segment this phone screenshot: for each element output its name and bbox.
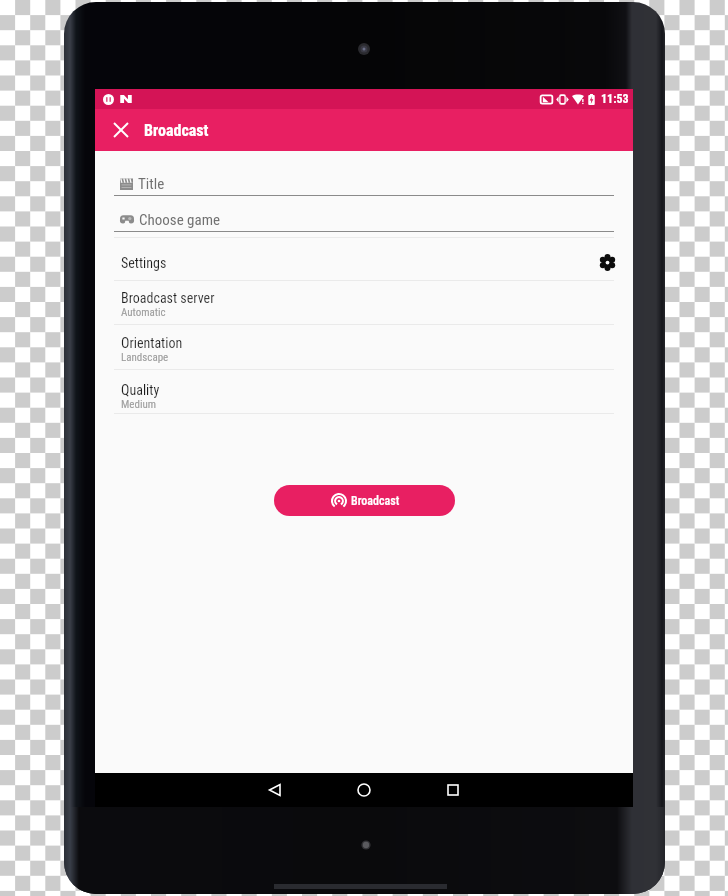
staticText: Settings [121, 255, 167, 271]
button[interactable]: Title [95, 172, 633, 195]
button[interactable]: Home [347, 773, 381, 807]
staticText: 11:53 [601, 92, 629, 106]
staticText: Quality [121, 382, 160, 398]
button[interactable]: Choose game [95, 208, 633, 231]
staticText: Landscape [121, 351, 169, 364]
staticText: Choose game [139, 211, 221, 229]
button[interactable]: Recent apps [436, 773, 470, 807]
button[interactable]: Broadcast server [95, 281, 633, 324]
button[interactable]: Broadcast [274, 485, 455, 516]
staticText: Broadcast server [121, 290, 215, 306]
button[interactable]: Back [258, 773, 292, 807]
staticText: Broadcast [351, 494, 400, 508]
staticText: Automatic [121, 306, 166, 319]
staticText: Title [138, 175, 165, 193]
staticText: Orientation [121, 335, 183, 351]
staticText: Broadcast [144, 121, 209, 140]
button[interactable]: Settings [95, 238, 633, 280]
button[interactable]: Orientation [95, 325, 633, 369]
button[interactable]: Close [109, 118, 133, 142]
button[interactable]: Quality [95, 370, 633, 413]
staticText: Medium [121, 398, 157, 411]
other: Settings [600, 255, 615, 270]
